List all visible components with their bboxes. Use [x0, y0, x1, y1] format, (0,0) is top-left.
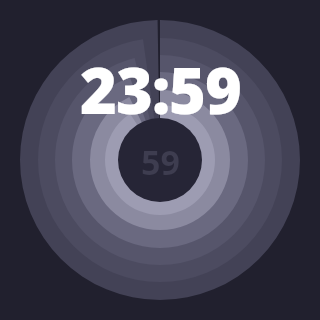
- staticText: 23:59: [80, 47, 241, 133]
- button[interactable]: Watch face showing 23:59: [0, 0, 320, 320]
- staticText: 59: [141, 139, 180, 185]
